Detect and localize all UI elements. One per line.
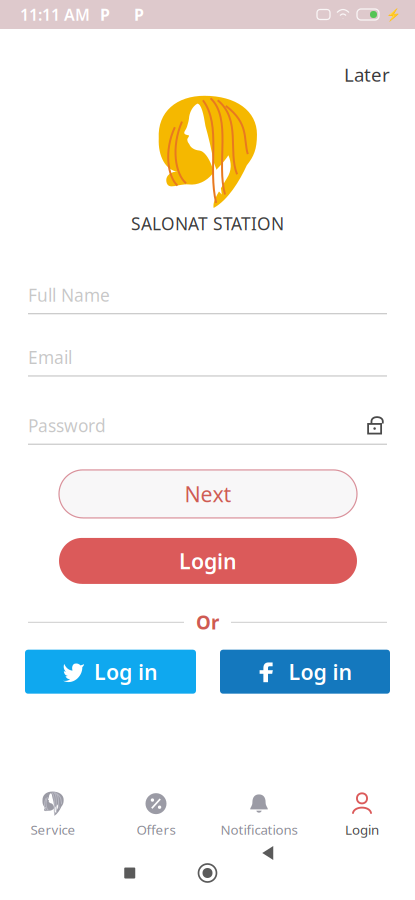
button[interactable]: Next [59, 470, 357, 518]
staticText: ⚡ [386, 8, 401, 21]
button[interactable]: Offers [104, 784, 207, 846]
staticText: Next [184, 480, 231, 508]
button[interactable]: Log in [220, 650, 390, 694]
staticText: Offers [136, 821, 175, 838]
button[interactable]: Log in [25, 650, 196, 694]
button[interactable]: Login [59, 538, 357, 584]
staticText: Login [345, 821, 379, 838]
button[interactable]: Recent apps [107, 846, 153, 900]
staticText: Full Name [28, 283, 110, 306]
staticText: P [134, 4, 144, 25]
staticText: Service [30, 821, 75, 838]
button[interactable]: Home [184, 846, 230, 900]
staticText: Password [28, 414, 106, 437]
staticText: Email [28, 346, 72, 369]
staticText: Later [344, 62, 390, 87]
button[interactable]: Service [1, 784, 104, 846]
button[interactable]: Later [334, 56, 400, 93]
button[interactable]: Back [262, 846, 308, 900]
staticText: Log in [94, 657, 158, 686]
staticText: 11:11 AM [20, 4, 90, 25]
staticText: Login [179, 547, 237, 575]
button[interactable]: Login [310, 784, 413, 846]
staticText: Log in [288, 657, 352, 686]
staticText: Or [196, 610, 219, 635]
staticText: Notifications [220, 821, 297, 838]
staticText: P [100, 4, 110, 25]
staticText: SALONAT STATION [131, 212, 284, 235]
button[interactable]: Notifications [207, 784, 310, 846]
